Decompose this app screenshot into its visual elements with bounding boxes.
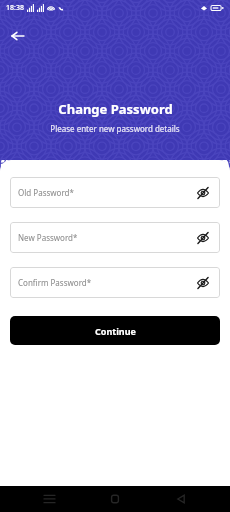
button[interactable]: Recent apps <box>32 486 66 512</box>
staticText: Confirm Password* <box>18 277 194 288</box>
staticText: Old Password* <box>18 187 194 198</box>
button[interactable]: Old Password* <box>10 177 220 208</box>
button[interactable]: Toggle password visibility <box>194 184 212 202</box>
staticText: Please enter new password details <box>50 123 180 134</box>
button[interactable]: Continue <box>10 316 220 345</box>
button[interactable]: Back <box>164 486 198 512</box>
button[interactable]: Back <box>6 24 30 48</box>
staticText: Continue <box>95 325 136 337</box>
staticText: 18:38 <box>6 3 24 13</box>
button[interactable]: Toggle password visibility <box>194 274 212 292</box>
staticText: New Password* <box>18 232 194 243</box>
button[interactable]: Toggle password visibility <box>194 229 212 247</box>
button[interactable]: New Password* <box>10 222 220 253</box>
button[interactable]: Home <box>98 486 132 512</box>
staticText: Change Password <box>58 100 173 118</box>
button[interactable]: Confirm Password* <box>10 267 220 298</box>
